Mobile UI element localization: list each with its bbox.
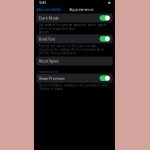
staticText: MOTION	[39, 31, 49, 34]
staticText: Reduce the motion of the user interface,…	[39, 44, 105, 55]
staticText: Use a dark colour scheme across the whol…	[39, 23, 106, 30]
button[interactable]: Dark Mode	[36, 13, 113, 22]
staticText: Dark Mode	[39, 15, 59, 21]
staticText: ‹	[36, 5, 38, 14]
staticText: Accessibility	[39, 7, 61, 12]
button[interactable]: Bold Text	[36, 34, 113, 43]
staticText: Bold Text	[39, 36, 55, 41]
staticText: ▮▮	[108, 1, 110, 4]
staticText: Appearance	[69, 7, 93, 12]
staticText: NOTIFICATIONS	[39, 70, 58, 73]
staticText: Show notification previews on the Lock S…	[39, 84, 110, 91]
button[interactable]: Show Previews	[36, 74, 113, 83]
staticText: Reset Styles	[39, 58, 59, 64]
staticText: Show Previews	[39, 75, 65, 81]
button[interactable]: Reset Styles	[36, 57, 113, 66]
staticText: 9:41	[39, 0, 46, 5]
button[interactable]: ‹	[36, 6, 61, 13]
